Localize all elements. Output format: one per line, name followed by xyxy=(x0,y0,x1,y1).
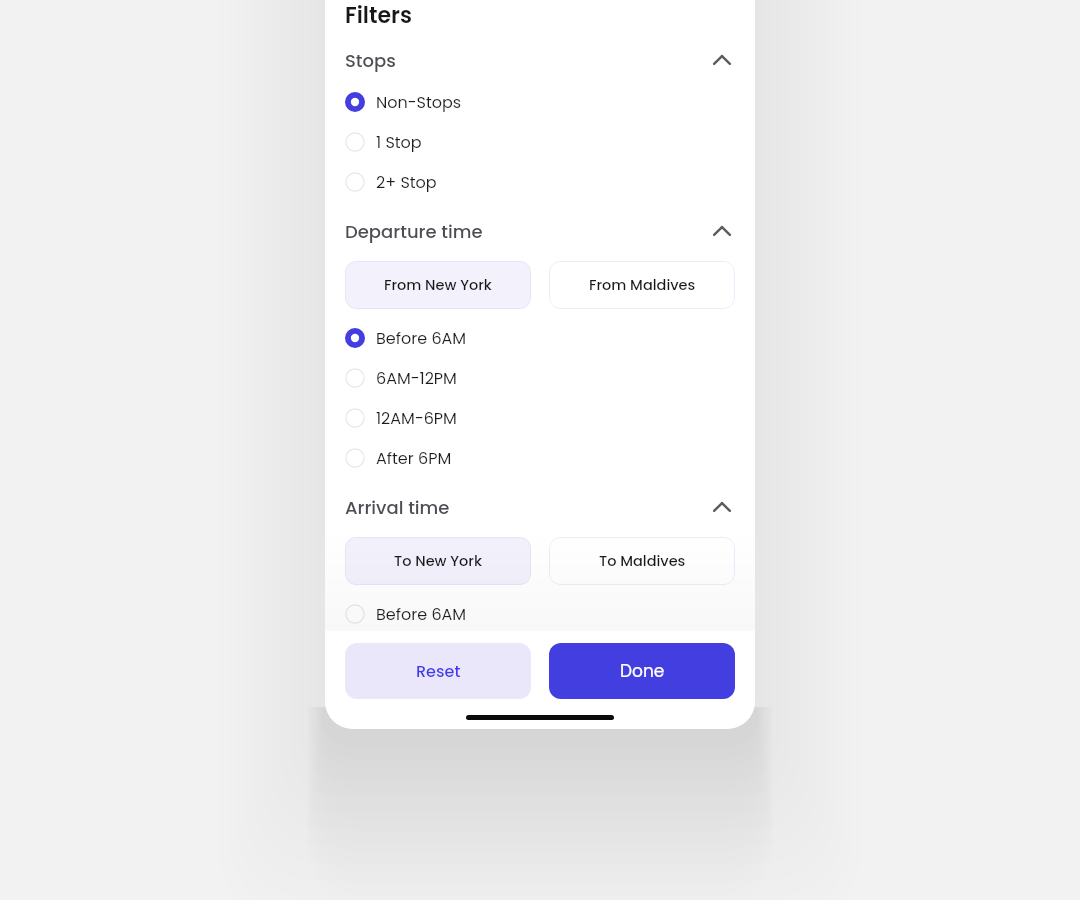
button[interactable]: Collapse section xyxy=(706,215,738,247)
button[interactable]: 1 Stop xyxy=(345,122,735,162)
staticText: Departure time xyxy=(345,219,483,244)
button[interactable]: 6AM-12PM xyxy=(345,358,735,398)
staticText: Done xyxy=(620,659,665,683)
button[interactable]: Before 6AM xyxy=(345,594,735,634)
button[interactable]: From Maldives xyxy=(549,261,735,309)
button[interactable]: Non-Stops xyxy=(345,82,735,122)
button[interactable]: Collapse section xyxy=(706,44,738,76)
staticText: 2+ Stop xyxy=(376,171,437,193)
button[interactable]: 2+ Stop xyxy=(345,162,735,202)
button[interactable]: Done xyxy=(549,643,735,699)
staticText: To Maldives xyxy=(599,551,686,571)
staticText: Arrival time xyxy=(345,495,450,520)
button[interactable]: 12AM-6PM xyxy=(345,398,735,438)
button[interactable]: To New York xyxy=(345,537,531,585)
staticText: From New York xyxy=(384,275,492,295)
button[interactable]: Collapse section xyxy=(706,491,738,523)
staticText: From Maldives xyxy=(589,275,696,295)
staticText: 6AM-12PM xyxy=(376,367,457,389)
staticText: 1 Stop xyxy=(376,131,422,153)
button[interactable]: From New York xyxy=(345,261,531,309)
staticText: To New York xyxy=(394,551,482,571)
staticText: 12AM-6PM xyxy=(376,407,457,429)
staticText: Before 6AM xyxy=(376,327,467,349)
staticText: Stops xyxy=(345,48,396,73)
staticText: Reset xyxy=(416,660,461,682)
button[interactable]: To Maldives xyxy=(549,537,735,585)
staticText: Before 6AM xyxy=(376,603,467,625)
button[interactable]: Reset xyxy=(345,643,531,699)
button[interactable]: Before 6AM xyxy=(345,318,735,358)
button[interactable]: After 6PM xyxy=(345,438,735,478)
staticText: Filters xyxy=(345,0,412,31)
staticText: After 6PM xyxy=(376,447,452,469)
staticText: Non-Stops xyxy=(376,91,462,113)
